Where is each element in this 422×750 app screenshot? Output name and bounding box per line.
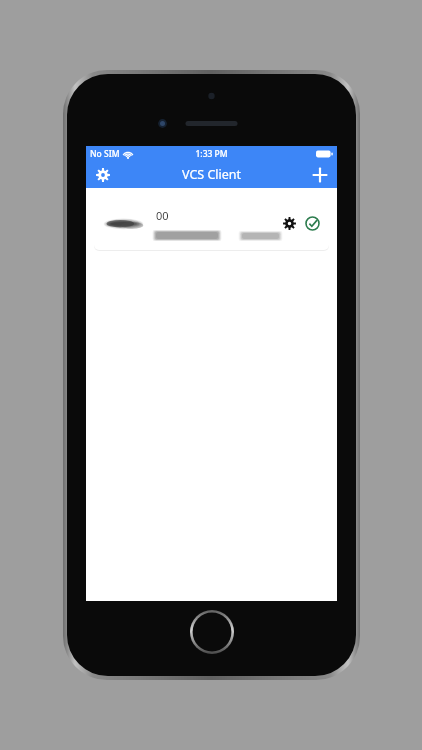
- button[interactable]: Add: [309, 164, 331, 186]
- button[interactable]: Device settings: [279, 213, 299, 233]
- button[interactable]: Connected: [302, 213, 322, 233]
- staticText: No SIM: [90, 148, 120, 160]
- staticText: VCS Client: [182, 166, 242, 183]
- staticText: 1:33 PM: [195, 148, 228, 160]
- button[interactable]: Home: [190, 610, 234, 654]
- staticText: 00: [156, 208, 169, 223]
- button[interactable]: Settings: [92, 164, 114, 186]
- button[interactable]: 00: [94, 196, 329, 250]
